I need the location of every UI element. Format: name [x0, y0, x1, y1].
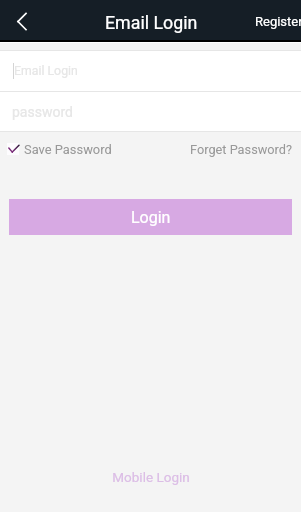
- button[interactable]: Email Login: [0, 51, 301, 91]
- button[interactable]: Login: [9, 199, 292, 235]
- staticText: password: [12, 104, 73, 120]
- button[interactable]: Back: [0, 0, 42, 40]
- staticText: Email Login: [14, 64, 78, 78]
- button[interactable]: Register: [250, 0, 301, 40]
- staticText: Save Password: [24, 142, 112, 157]
- button[interactable]: password: [0, 92, 301, 131]
- staticText: Register: [255, 14, 301, 29]
- staticText: Login: [131, 208, 171, 227]
- staticText: Email Login: [105, 12, 198, 33]
- button[interactable]: Save Password: [0, 142, 118, 157]
- button[interactable]: Forget Password?: [190, 142, 301, 157]
- button[interactable]: Mobile Login: [102, 465, 200, 489]
